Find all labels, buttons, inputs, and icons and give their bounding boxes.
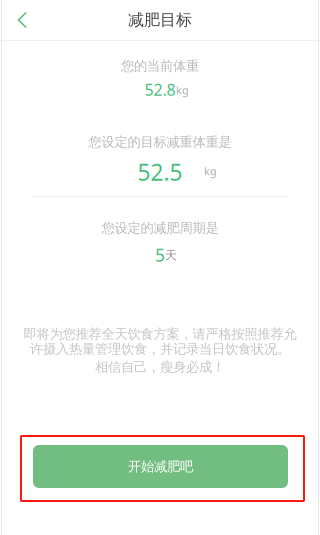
staticText: 您设定的目标减重体重是 [88, 134, 231, 150]
staticText: 许摄入热量管理饮食，并记录当日饮食状况。 [30, 341, 290, 357]
staticText: 即将为您推荐全天饮食方案，请严格按照推荐允 [23, 326, 296, 342]
staticText: 52.5 [137, 157, 182, 187]
staticText: kg [176, 83, 189, 97]
staticText: 减肥目标 [128, 10, 192, 30]
staticText: 天 [165, 248, 177, 263]
staticText: 52.8 [144, 79, 175, 100]
staticText: 您的当前体重 [121, 58, 199, 74]
staticText: 5 [155, 243, 165, 266]
staticText: 开始减肥吧 [128, 458, 193, 475]
staticText: 您设定的减肥周期是 [101, 220, 218, 236]
button[interactable]: 开始减肥吧 [33, 445, 288, 488]
button[interactable]: Back [0, 0, 45, 40]
staticText: 相信自己，瘦身必成！ [95, 359, 225, 375]
staticText: kg [204, 164, 217, 178]
